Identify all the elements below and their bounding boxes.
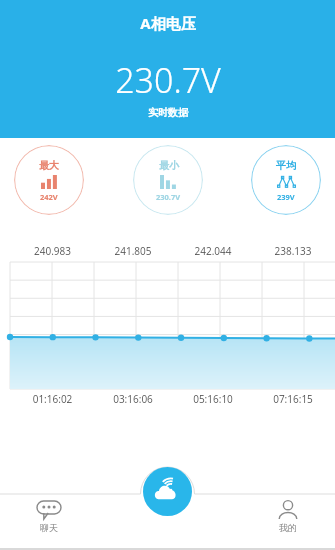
- staticText: 238.133: [253, 244, 333, 258]
- staticText: 240.983: [12, 244, 93, 258]
- staticText: 05:16:10: [173, 392, 253, 406]
- staticText: 平均: [276, 159, 296, 172]
- staticText: 07:16:15: [253, 392, 333, 406]
- button[interactable]: 我的: [277, 500, 299, 533]
- staticText: 实时数据: [148, 106, 188, 119]
- button[interactable]: 最大: [14, 145, 84, 215]
- staticText: A相电压: [140, 13, 196, 33]
- staticText: 242V: [40, 192, 58, 202]
- staticText: 01:16:02: [12, 392, 93, 406]
- staticText: 最大: [39, 159, 59, 172]
- button[interactable]: 最小: [133, 145, 203, 215]
- button[interactable]: Cloud data: [143, 467, 192, 516]
- staticText: 242.044: [173, 244, 253, 258]
- staticText: 聊天: [40, 522, 58, 533]
- button[interactable]: 平均: [251, 145, 321, 215]
- staticText: 最小: [159, 159, 179, 172]
- staticText: 我的: [279, 522, 297, 533]
- staticText: 230.7V: [156, 192, 181, 202]
- staticText: 03:16:06: [93, 392, 173, 406]
- staticText: 241.805: [93, 244, 173, 258]
- staticText: 230.7V: [115, 57, 221, 103]
- button[interactable]: 聊天: [36, 500, 62, 533]
- staticText: 239V: [277, 192, 295, 202]
